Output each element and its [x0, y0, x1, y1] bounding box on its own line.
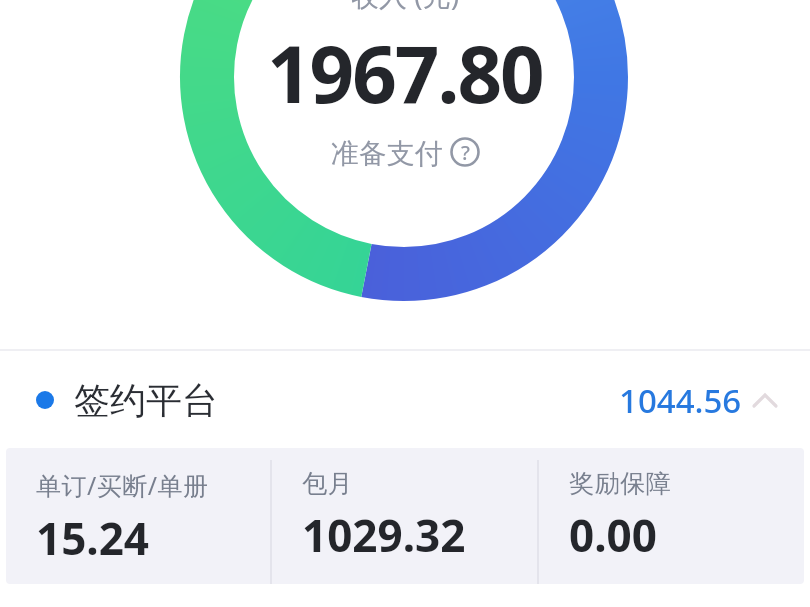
staticText: 签约平台	[74, 378, 218, 423]
staticText: 收入 (元)	[351, 0, 460, 14]
staticText: ?	[461, 139, 470, 166]
staticText: 1967.80	[267, 20, 543, 126]
button[interactable]: ?	[450, 137, 480, 167]
staticText: 15.24	[36, 508, 150, 568]
button[interactable]: 包月	[302, 448, 537, 584]
button[interactable]: 奖励保障	[569, 448, 804, 584]
staticText: 包月	[302, 468, 353, 499]
staticText: 奖励保障	[569, 468, 671, 499]
staticText: 单订/买断/单册	[36, 468, 209, 502]
staticText: 1044.56	[619, 378, 742, 423]
staticText: 1029.32	[302, 505, 466, 565]
staticText: 0.00	[569, 505, 657, 565]
button[interactable]: 单订/买断/单册	[36, 448, 270, 584]
button[interactable]: 签约平台	[0, 374, 810, 426]
staticText: 准备支付	[331, 136, 443, 168]
